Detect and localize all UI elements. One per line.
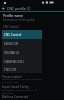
staticText: File saved to /sdcard/cnc/out.cfg (2, 89, 37, 92)
staticText: SIEMENS (CB-) (4, 60, 25, 64)
staticText: Description of this profile (3, 18, 35, 22)
staticText: TNC (CR) (4, 68, 17, 72)
staticText: CNC profile (7, 6, 26, 11)
button[interactable]: FANUC (R) (2, 39, 42, 48)
staticText: Profile name (3, 13, 24, 18)
button[interactable]: CNC Control (2, 30, 42, 39)
staticText: OKUMA (L) (4, 51, 20, 55)
staticText: CNC Control (3, 25, 19, 29)
button[interactable]: OKUMA (L) (2, 48, 42, 57)
button[interactable]: Navigate up (0, 5, 7, 12)
button[interactable]: SIEMENS (CB-) (2, 57, 42, 66)
staticText: Presets loaded (2, 75, 22, 79)
staticText: Size 12 kB (2, 92, 13, 95)
staticText: Last sync 12:04 (2, 81, 19, 84)
staticText: CNC Control (4, 33, 22, 37)
staticText: Machine Connected (2, 95, 29, 99)
staticText: FANUC (R) (4, 42, 19, 46)
staticText: Values applied to the selected profile (2, 78, 42, 81)
staticText: Export Saved Config (2, 85, 29, 89)
button[interactable]: TNC (CR) (2, 66, 42, 73)
